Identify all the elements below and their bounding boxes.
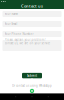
staticText: Please explain your problem / contact us…	[4, 38, 50, 45]
button[interactable]: Open WhatsApp	[30, 89, 34, 93]
button[interactable]: Your Phone Number	[2, 31, 61, 37]
button[interactable]: Please explain your problem / contact us…	[2, 40, 61, 51]
staticText: Or contact us using WhatsApp	[12, 84, 52, 87]
button[interactable]: Your Email	[2, 21, 61, 27]
button[interactable]: Your Name	[2, 11, 61, 17]
staticText: Your Name	[4, 12, 18, 16]
button[interactable]: Submit	[22, 73, 42, 78]
staticText: Your Phone Number	[4, 32, 33, 36]
staticText: Contact us	[21, 3, 43, 9]
staticText: Submit	[27, 74, 37, 77]
staticText: Your Email	[4, 22, 17, 26]
